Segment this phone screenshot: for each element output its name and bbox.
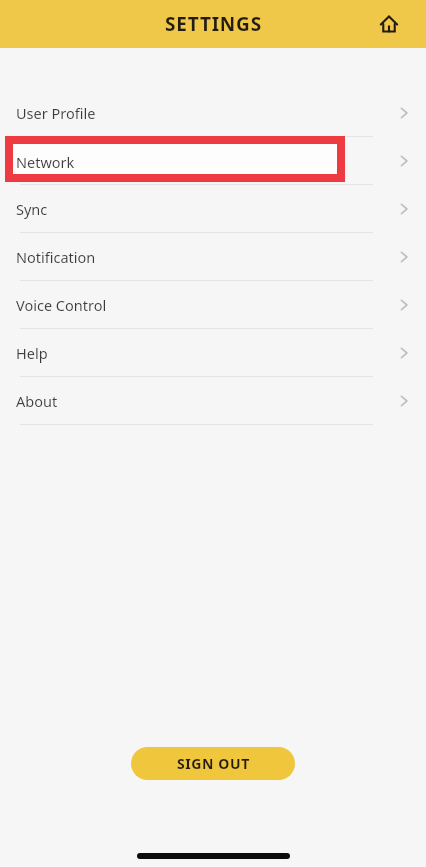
staticText: Network: [16, 151, 75, 171]
staticText: Voice Control: [16, 295, 107, 315]
staticText: Notification: [16, 247, 96, 267]
button[interactable]: Voice Control: [0, 281, 426, 329]
staticText: User Profile: [16, 103, 96, 123]
staticText: SETTINGS: [165, 11, 262, 37]
staticText: Network: [16, 152, 75, 172]
staticText: Help: [16, 343, 48, 363]
staticText: About: [16, 391, 58, 411]
button[interactable]: Notification: [0, 233, 426, 281]
button[interactable]: Home: [373, 8, 405, 40]
staticText: Sync: [16, 199, 48, 219]
button[interactable]: About: [0, 377, 426, 425]
button[interactable]: Network: [0, 137, 426, 185]
staticText: SIGN OUT: [177, 754, 250, 773]
button[interactable]: User Profile: [0, 89, 426, 137]
button[interactable]: Help: [0, 329, 426, 377]
button[interactable]: Sync: [0, 185, 426, 233]
button[interactable]: SIGN OUT: [131, 747, 295, 780]
